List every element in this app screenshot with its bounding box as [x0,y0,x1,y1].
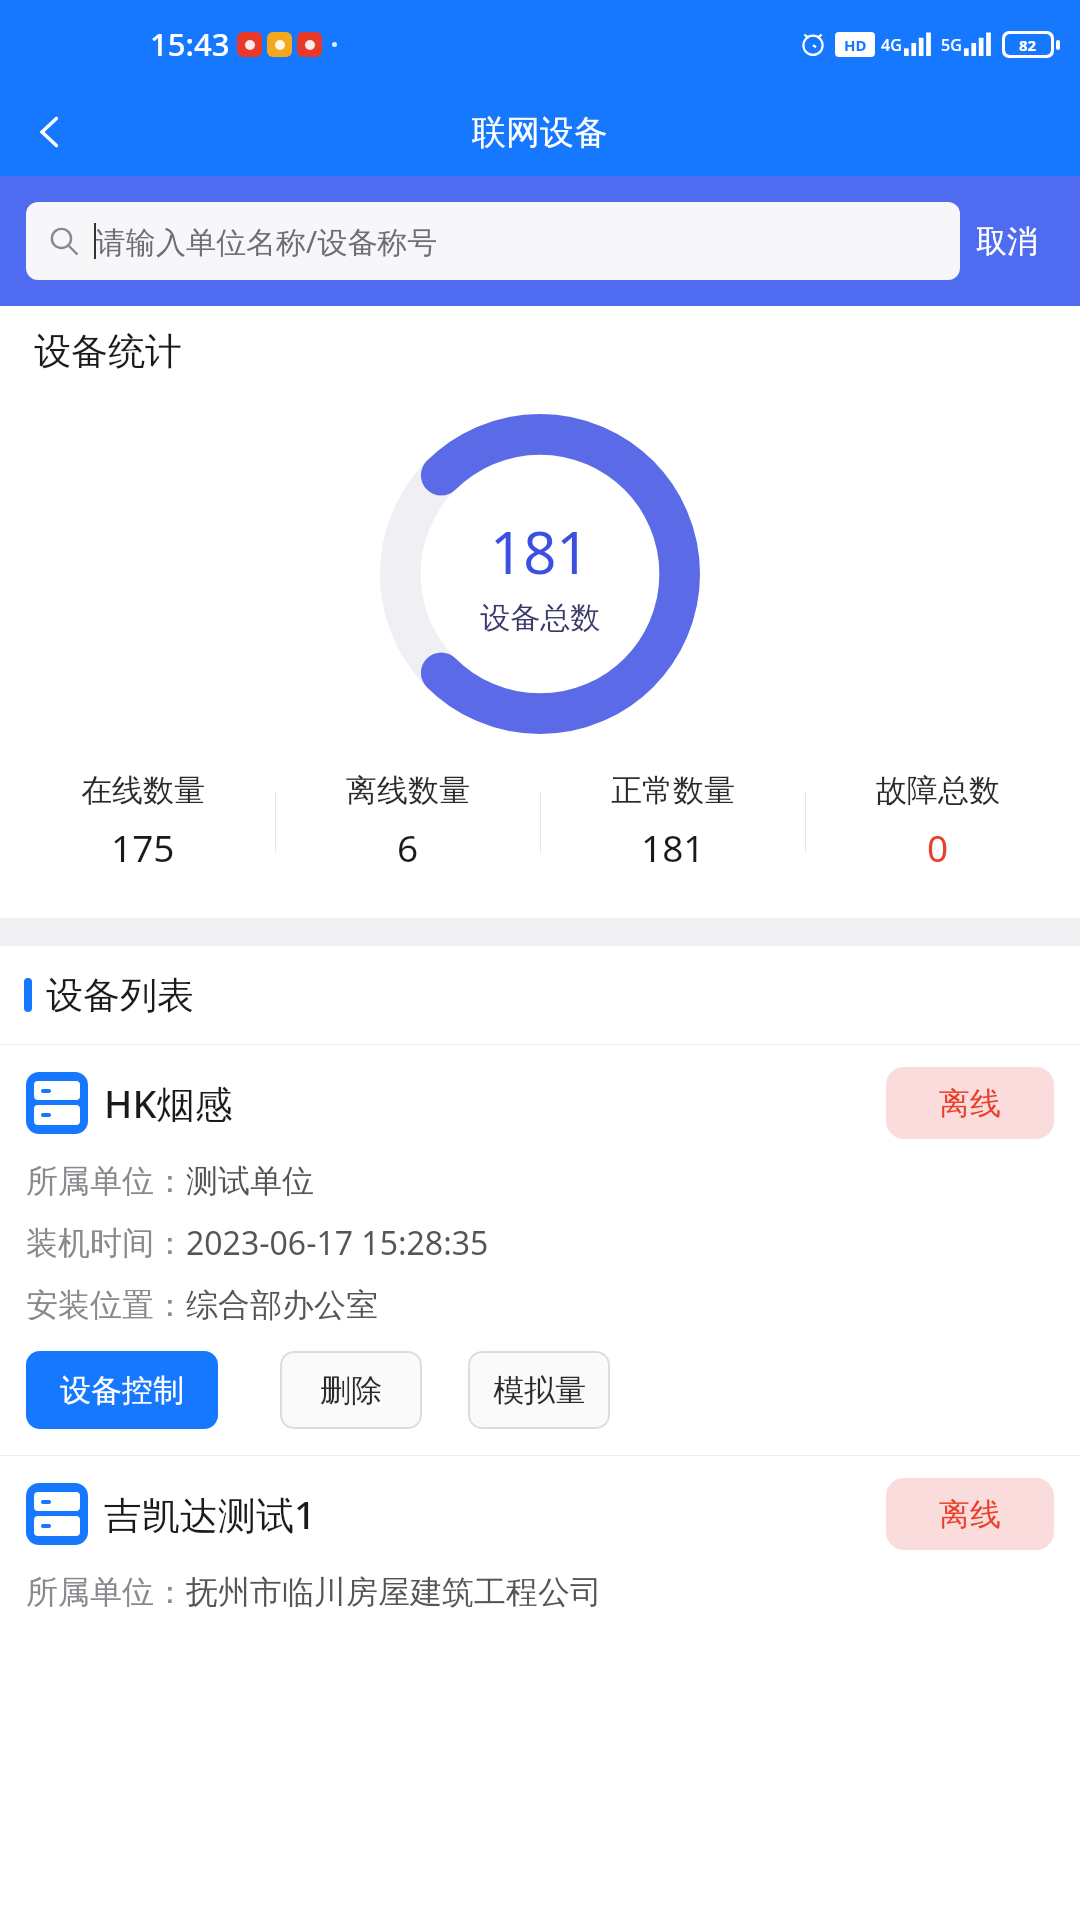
button[interactable]: 在线数量 [10,765,275,878]
button[interactable]: 离线数量 [276,765,540,878]
staticText: 离线数量 [346,771,470,810]
staticText: 175 [111,822,175,872]
staticText: 0 [927,822,949,872]
staticText: HK烟感 [104,1077,233,1129]
staticText: 模拟量 [493,1371,586,1410]
staticText: 设备统计 [34,328,182,375]
staticText: 设备控制 [60,1371,184,1410]
button[interactable]: 返回 [14,96,86,168]
staticText: 请输入单位名称/设备称号 [96,221,438,262]
button[interactable]: 故障总数 [806,765,1070,878]
staticText: 测试单位 [186,1161,314,1201]
button[interactable]: 吉凯达测试1 [0,1456,1080,1632]
staticText: 安装位置： [26,1285,186,1325]
button[interactable]: 模拟量 [468,1351,610,1429]
button[interactable]: 离线 [886,1478,1054,1550]
staticText: 离线 [939,1084,1001,1123]
staticText: 设备总数 [480,599,600,637]
button[interactable]: 离线 [886,1067,1054,1139]
staticText: 吉凯达测试1 [104,1488,316,1540]
staticText: 所属单位： [26,1572,186,1612]
staticText: 综合部办公室 [186,1285,378,1325]
button[interactable]: 请输入单位名称/设备称号 [26,202,960,280]
staticText: 联网设备 [472,111,608,154]
staticText: 在线数量 [81,771,205,810]
staticText: 装机时间： [26,1223,186,1263]
staticText: 15:43 [150,23,230,65]
staticText: 抚州市临川房屋建筑工程公司 [186,1572,602,1612]
staticText: HD [844,35,867,55]
staticText: 4G [881,34,902,56]
staticText: 故障总数 [876,771,1000,810]
staticText: 离线 [939,1495,1001,1534]
button[interactable]: 删除 [280,1351,422,1429]
staticText: 删除 [320,1371,382,1410]
button[interactable]: HK烟感 [0,1045,1080,1455]
staticText: 181 [490,512,590,591]
staticText: 设备列表 [46,972,194,1019]
staticText: 正常数量 [611,771,735,810]
button[interactable]: 设备控制 [26,1351,218,1429]
staticText: 6 [397,822,419,872]
staticText: 82 [1019,35,1037,55]
staticText: 2023-06-17 15:28:35 [186,1221,489,1265]
button[interactable]: 取消 [960,210,1054,273]
staticText: 5G [941,34,962,56]
staticText: 所属单位： [26,1161,186,1201]
button[interactable]: 正常数量 [541,765,805,878]
staticText: 取消 [976,222,1038,261]
staticText: 181 [641,822,705,872]
